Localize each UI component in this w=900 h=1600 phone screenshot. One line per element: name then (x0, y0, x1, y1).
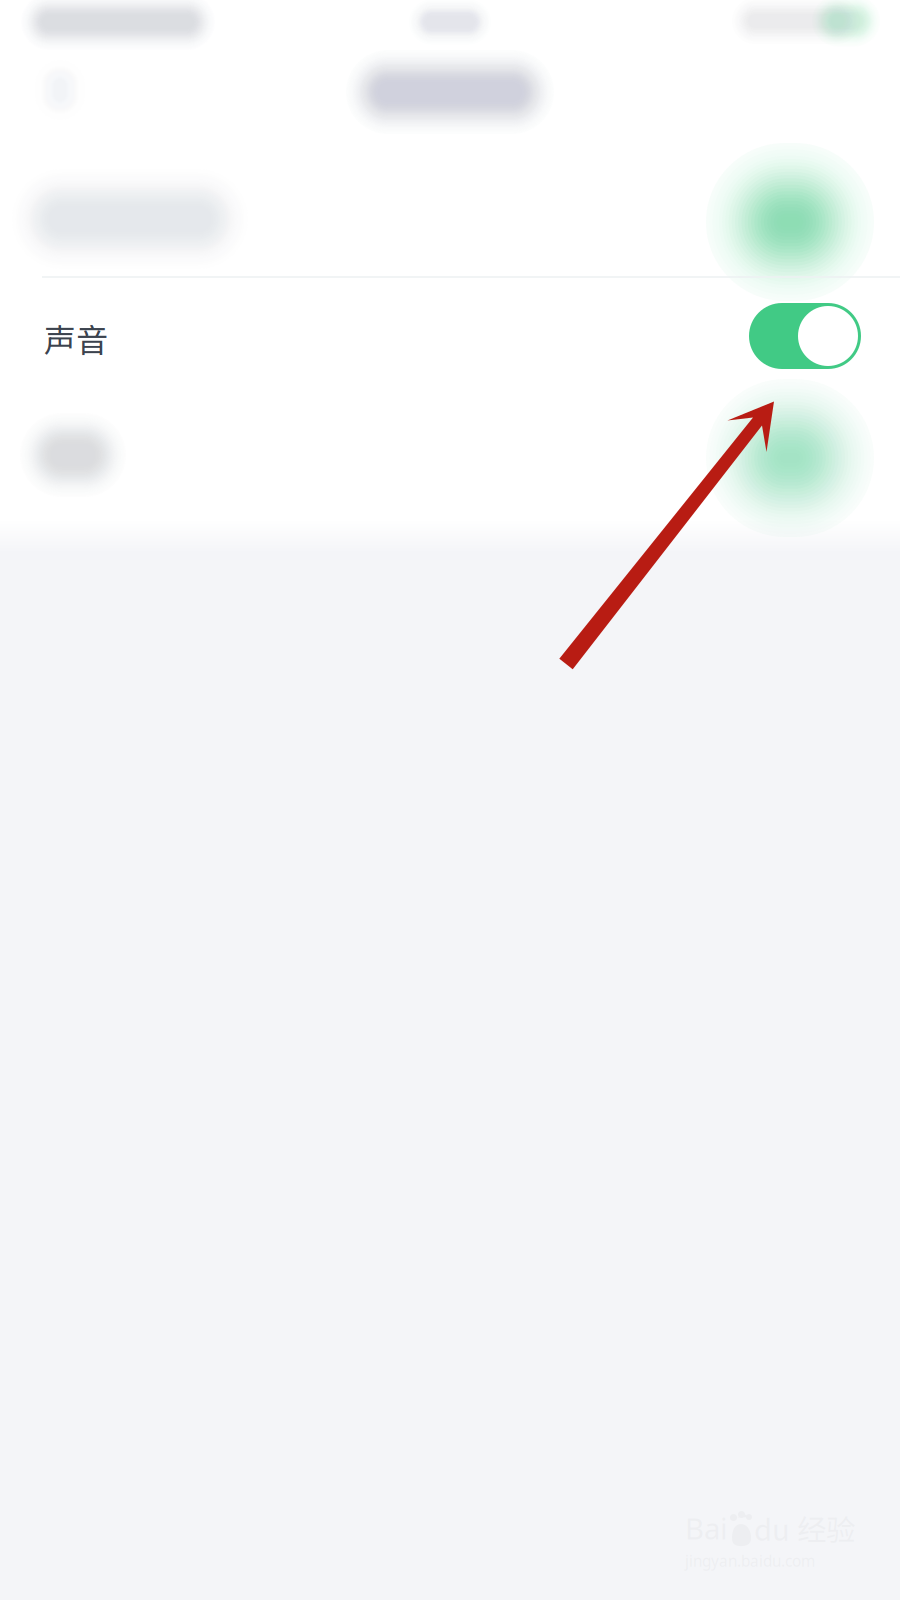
button[interactable]: 声音 (0, 273, 900, 403)
staticText: 声音 (44, 315, 108, 361)
